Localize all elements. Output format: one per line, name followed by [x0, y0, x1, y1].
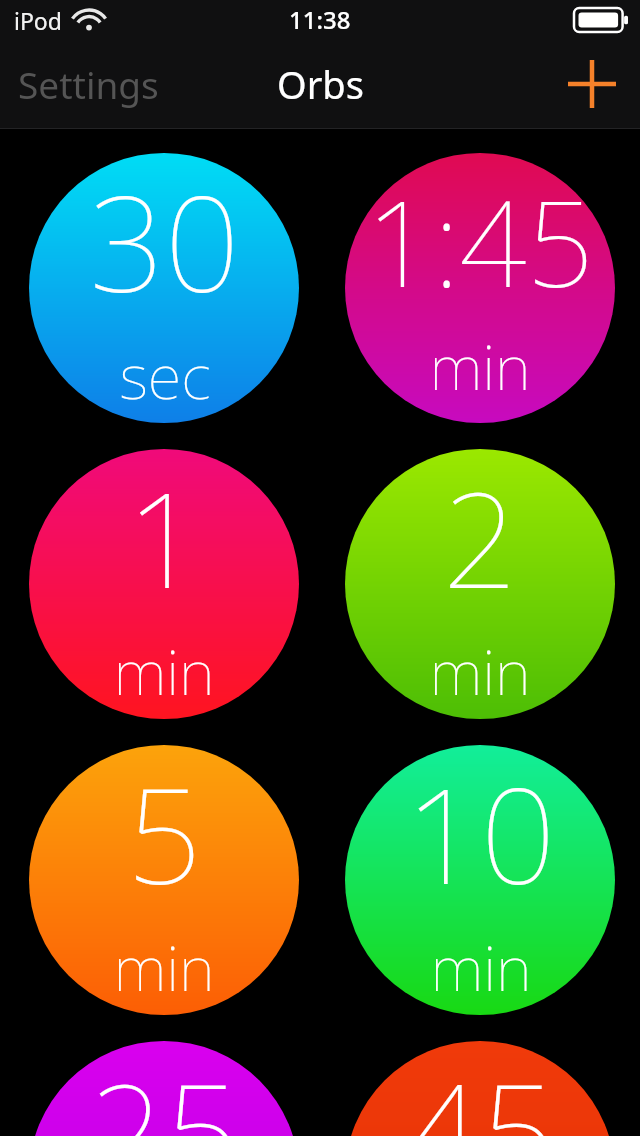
staticText: iPod [14, 5, 62, 36]
staticText: 1:45 [366, 161, 594, 322]
button[interactable]: 10 [345, 745, 615, 1015]
staticText: min [113, 925, 215, 1009]
button[interactable]: 30 [29, 153, 299, 423]
staticText: min [429, 324, 531, 408]
button[interactable]: 5 [29, 745, 299, 1015]
button[interactable]: 2 [345, 449, 615, 719]
button[interactable]: 1:45 [345, 153, 615, 423]
staticText: 25 [89, 1041, 240, 1136]
staticText: sec [119, 333, 211, 417]
staticText: 5 [126, 745, 202, 923]
staticText: 30 [89, 153, 240, 331]
button[interactable]: Add timer [562, 54, 622, 114]
staticText: 11:38 [289, 3, 351, 36]
staticText: min [430, 925, 532, 1009]
staticText: 2 [442, 449, 518, 627]
button[interactable]: 45 [345, 1041, 615, 1136]
staticText: Settings [18, 59, 159, 109]
button[interactable]: 1 [29, 449, 299, 719]
staticText: Orbs [277, 58, 364, 110]
staticText: min [429, 629, 531, 713]
staticText: 1 [126, 449, 202, 627]
button[interactable]: Settings [8, 49, 169, 119]
staticText: 10 [405, 745, 556, 923]
staticText: 45 [405, 1041, 556, 1136]
button[interactable]: 25 [29, 1041, 299, 1136]
staticText: min [113, 629, 215, 713]
